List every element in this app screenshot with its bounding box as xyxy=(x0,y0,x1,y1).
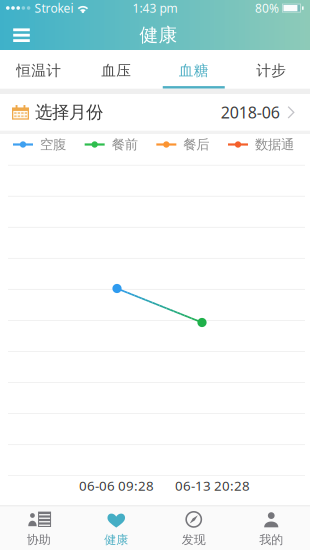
staticText: 06-13 20:28 xyxy=(175,477,250,494)
staticText: 餐后 xyxy=(183,136,209,153)
staticText: 80% xyxy=(255,0,279,16)
button[interactable]: 计步 xyxy=(232,50,310,89)
staticText: 健康 xyxy=(104,532,128,547)
staticText: 2018-06 xyxy=(221,102,280,123)
button[interactable]: 血糖 xyxy=(155,50,232,89)
staticText: 我的 xyxy=(259,532,283,547)
button[interactable]: 发现 xyxy=(155,506,232,550)
staticText: 选择月份 xyxy=(35,102,103,123)
button[interactable]: 协助 xyxy=(0,506,77,550)
button[interactable]: 选择月份 xyxy=(0,94,310,131)
staticText: 健康 xyxy=(139,23,177,46)
staticText: 1:43 pm xyxy=(132,0,177,16)
staticText: 协助 xyxy=(27,532,51,547)
staticText: 数据通 xyxy=(255,136,294,153)
button[interactable]: 恒温计 xyxy=(0,50,77,89)
button[interactable]: 健康 xyxy=(77,506,155,550)
button[interactable]: 血压 xyxy=(77,50,155,89)
staticText: 空腹 xyxy=(40,136,66,153)
button[interactable]: 我的 xyxy=(232,506,310,550)
staticText: 恒温计 xyxy=(16,61,61,79)
staticText: 血压 xyxy=(101,61,131,79)
staticText: 发现 xyxy=(182,532,206,547)
staticText: Strokei xyxy=(34,0,73,16)
button[interactable]: Menu xyxy=(0,16,42,50)
staticText: 06-06 09:28 xyxy=(79,477,154,494)
staticText: 血糖 xyxy=(179,61,209,79)
staticText: 餐前 xyxy=(112,136,138,153)
staticText: 计步 xyxy=(256,61,286,79)
